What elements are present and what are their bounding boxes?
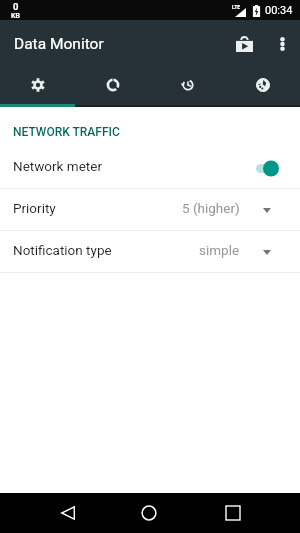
button[interactable]: Settings: [0, 62, 75, 105]
button[interactable]: Priority: [0, 189, 300, 231]
button[interactable]: Home: [119, 493, 179, 533]
button[interactable]: Recents: [203, 493, 263, 533]
staticText: 5 (higher): [182, 200, 240, 216]
staticText: Notification type: [13, 242, 112, 258]
staticText: 00:34: [265, 4, 293, 17]
staticText: Network meter: [13, 158, 102, 174]
staticText: Priority: [13, 200, 56, 216]
staticText: simple: [199, 242, 240, 258]
staticText: Data Monitor: [14, 35, 104, 53]
button[interactable]: Network meter: [0, 147, 300, 189]
button[interactable]: Back: [38, 493, 98, 533]
button[interactable]: Play Store: [223, 20, 265, 62]
staticText: 0: [13, 1, 19, 12]
button[interactable]: History: [150, 62, 225, 105]
button[interactable]: Usage: [75, 62, 150, 105]
staticText: KB: [11, 12, 20, 20]
staticText: NETWORK TRAFFIC: [13, 125, 120, 139]
button[interactable]: More options: [265, 20, 300, 62]
button[interactable]: Notification type: [0, 231, 300, 273]
staticText: LTE: [232, 4, 241, 10]
button[interactable]: Network: [225, 62, 300, 105]
